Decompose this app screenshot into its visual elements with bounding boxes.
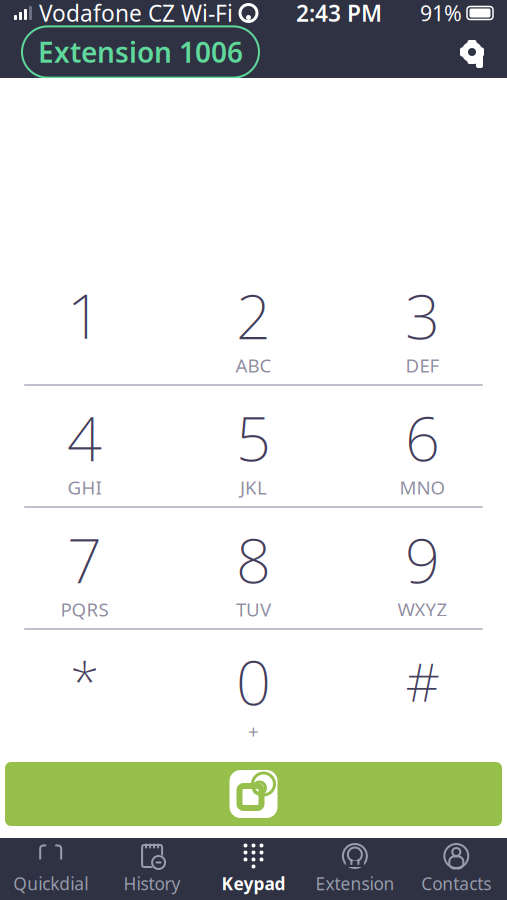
staticText: 5 xyxy=(236,397,271,478)
staticText: 3 xyxy=(405,275,440,356)
staticText: 1 xyxy=(67,274,102,356)
staticText: 0 xyxy=(236,641,271,722)
staticText: MNO xyxy=(399,475,445,500)
staticText: TUV xyxy=(236,597,271,622)
button[interactable]: Contacts xyxy=(406,838,507,900)
staticText: Extension xyxy=(315,872,394,895)
button[interactable]: * xyxy=(0,630,169,750)
staticText: 6 xyxy=(405,397,440,478)
button[interactable]: Settings xyxy=(455,35,507,69)
staticText: 91% xyxy=(420,0,462,27)
staticText: 7 xyxy=(67,519,102,600)
button[interactable]: 0 xyxy=(169,630,338,750)
button[interactable]: # xyxy=(338,630,507,750)
button[interactable]: Quickdial xyxy=(0,838,101,900)
staticText: PQRS xyxy=(60,597,108,622)
staticText: JKL xyxy=(240,475,267,500)
button[interactable]: Keypad xyxy=(203,838,304,900)
staticText: Keypad xyxy=(221,872,285,895)
staticText: 2:43 PM xyxy=(296,0,382,28)
button[interactable]: 5 xyxy=(169,386,338,506)
button[interactable]: Call xyxy=(0,762,507,826)
staticText: 4 xyxy=(67,397,102,478)
button[interactable]: 6 xyxy=(338,386,507,506)
button[interactable]: 9 xyxy=(338,508,507,628)
staticText: * xyxy=(70,646,99,716)
staticText: Vodafone CZ Wi-Fi xyxy=(39,0,233,28)
button[interactable]: Extension 1006 xyxy=(22,26,259,78)
staticText: Contacts xyxy=(421,872,491,895)
staticText: GHI xyxy=(67,475,101,500)
staticText: Extension 1006 xyxy=(38,33,243,71)
staticText: Quickdial xyxy=(13,872,88,895)
staticText: 8 xyxy=(236,519,271,600)
button[interactable]: 2 xyxy=(169,264,338,384)
staticText: # xyxy=(405,646,439,716)
staticText: 2 xyxy=(236,275,271,356)
button[interactable]: Extension xyxy=(304,838,406,900)
staticText: DEF xyxy=(405,353,439,378)
staticText: + xyxy=(248,719,259,744)
staticText: 9 xyxy=(405,519,440,600)
staticText: WXYZ xyxy=(397,597,447,622)
staticText: History xyxy=(124,872,181,895)
button[interactable]: 7 xyxy=(0,508,169,628)
button[interactable]: 3 xyxy=(338,264,507,384)
button[interactable]: 8 xyxy=(169,508,338,628)
staticText: ABC xyxy=(235,353,271,378)
button[interactable]: History xyxy=(101,838,203,900)
button[interactable]: 4 xyxy=(0,386,169,506)
button[interactable]: 1 xyxy=(0,264,169,384)
